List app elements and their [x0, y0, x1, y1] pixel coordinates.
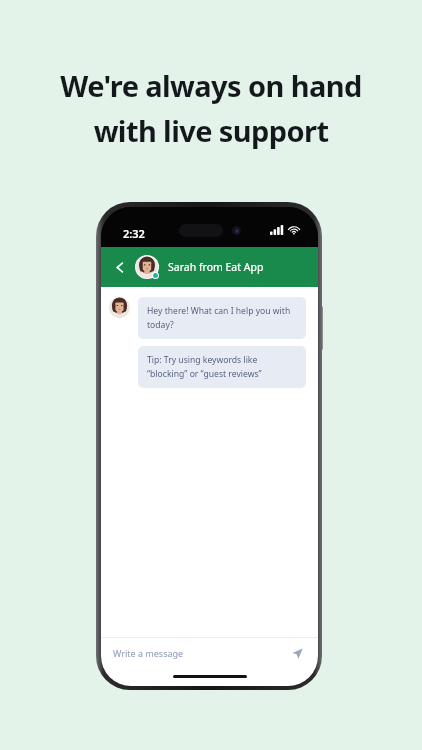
button[interactable]: Write a message: [101, 638, 318, 668]
staticText: with live support: [0, 111, 422, 150]
button[interactable]: Send: [288, 644, 306, 662]
button[interactable]: Hey there! What can I help you with toda…: [138, 297, 306, 339]
staticText: 2:32: [123, 226, 145, 241]
button[interactable]: Tip: Try using keywords like “blocking” …: [138, 346, 306, 388]
staticText: Hey there! What can I help you with toda…: [147, 305, 297, 331]
staticText: Sarah from Eat App: [168, 260, 264, 274]
staticText: Write a message: [113, 647, 288, 659]
staticText: Tip: Try using keywords like “blocking” …: [147, 354, 297, 380]
button[interactable]: Back: [109, 256, 131, 278]
staticText: We're always on hand: [0, 66, 422, 105]
